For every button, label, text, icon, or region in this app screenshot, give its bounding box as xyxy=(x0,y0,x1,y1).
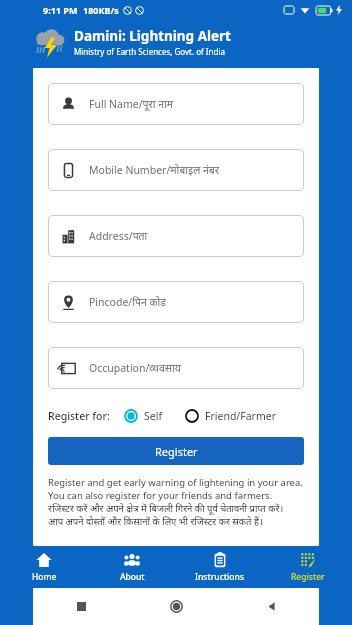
button[interactable]: Full Name/पूरा नाम xyxy=(48,83,304,125)
staticText: 9:11 PM xyxy=(43,4,78,16)
staticText: Full Name/पूरा नाम xyxy=(89,97,174,111)
button[interactable]: Register xyxy=(264,546,352,588)
button[interactable]: Register xyxy=(48,437,304,465)
button[interactable]: Recent apps xyxy=(33,588,129,625)
staticText: आप अपने दोस्तों और किसानों के लिए भी रजि… xyxy=(48,515,263,528)
button[interactable]: Back xyxy=(224,588,319,625)
button[interactable]: About xyxy=(88,546,176,588)
button[interactable]: Home xyxy=(0,546,88,588)
button[interactable]: Self xyxy=(124,409,163,423)
staticText: Mobile Number/मोबाइल नंबर xyxy=(89,163,220,177)
staticText: रजिस्टर करें और अपने क्षेत्र में बिजली ग… xyxy=(48,502,284,515)
staticText: Self xyxy=(144,409,163,423)
staticText: 180KB/s xyxy=(83,4,119,16)
button[interactable]: Occupation/व्यवसाय xyxy=(48,347,304,389)
staticText: Address/पता xyxy=(89,229,148,243)
staticText: Pincode/पिन कोड xyxy=(89,295,166,309)
staticText: About xyxy=(120,571,145,583)
button[interactable]: Address/पता xyxy=(48,215,304,257)
staticText: Damini: Lightning Alert xyxy=(74,27,231,45)
staticText: Register and get early warning of lighte… xyxy=(48,476,303,489)
button[interactable]: Pincode/पिन कोड xyxy=(48,281,304,323)
button[interactable]: Instructions xyxy=(176,546,264,588)
button[interactable]: Mobile Number/मोबाइल नंबर xyxy=(48,149,304,191)
staticText: Register xyxy=(291,571,325,583)
staticText: Friend/Farmer xyxy=(205,409,277,423)
staticText: Occupation/व्यवसाय xyxy=(89,361,181,375)
staticText: Register xyxy=(155,444,198,459)
staticText: Home xyxy=(32,571,57,583)
button[interactable]: Home xyxy=(129,588,224,625)
staticText: Register for: xyxy=(48,409,110,423)
button[interactable]: Friend/Farmer xyxy=(185,409,277,423)
staticText: Ministry of Earth Sciences, Govt. of Ind… xyxy=(74,46,225,57)
staticText: Instructions xyxy=(195,571,245,583)
staticText: You can also register for your friends a… xyxy=(48,489,273,502)
